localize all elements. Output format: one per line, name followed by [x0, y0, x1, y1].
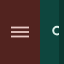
- button[interactable]: Open navigation menu: [0, 0, 40, 64]
- button[interactable]: Search: [52, 8, 64, 56]
